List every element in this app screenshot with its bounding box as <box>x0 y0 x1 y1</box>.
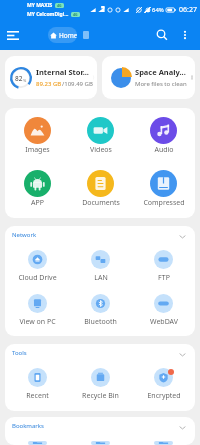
staticText: Images <box>25 145 50 155</box>
staticText: FTP <box>158 273 170 283</box>
button[interactable]: FTP <box>132 250 195 283</box>
staticText: Cloud Drive <box>18 273 57 283</box>
staticText: View on PC <box>19 317 56 327</box>
button[interactable]: Download <box>5 441 69 445</box>
button[interactable]: Audio <box>132 117 195 155</box>
staticText: Home <box>59 31 77 40</box>
button[interactable]: View on PC <box>5 294 69 327</box>
button[interactable]: Menu <box>4 26 22 44</box>
staticText: Documents <box>82 198 120 208</box>
button[interactable]: Recycle Bin <box>69 368 132 401</box>
staticText: % <box>23 78 27 83</box>
staticText: Network <box>12 231 37 239</box>
button[interactable]: Cloud Drive <box>5 250 69 283</box>
button[interactable]: WebDAV <box>132 294 195 327</box>
staticText: Internal Stor... <box>36 67 89 77</box>
button[interactable]: Collapse Bookmarks <box>178 423 187 432</box>
button[interactable]: 82 <box>5 56 97 99</box>
button[interactable]: Storage <box>79 28 93 42</box>
button[interactable]: Space Analy... <box>102 56 195 99</box>
staticText: APP <box>31 198 44 208</box>
button[interactable]: Pictures <box>69 441 132 445</box>
staticText: Space Analy... <box>135 67 186 77</box>
button[interactable]: Compressed <box>132 170 195 208</box>
staticText: MY MAXIS <box>27 2 53 9</box>
button[interactable]: Documents <box>69 170 132 208</box>
staticText: Compressed <box>143 198 185 208</box>
staticText: WebDAV <box>150 317 178 327</box>
button[interactable]: APP <box>5 170 69 208</box>
staticText: 4G <box>57 3 62 8</box>
staticText: MY CelcomDigi... <box>27 11 69 18</box>
button[interactable]: Search <box>155 28 169 42</box>
staticText: Audio <box>154 145 174 155</box>
button[interactable]: Bluetooth <box>69 294 132 327</box>
staticText: Videos <box>90 145 112 155</box>
staticText: Encrypted <box>147 391 181 401</box>
button[interactable]: More options <box>178 28 192 42</box>
staticText: Recent <box>26 391 49 401</box>
staticText: 4G <box>73 12 78 17</box>
staticText: Recycle Bin <box>82 391 119 401</box>
button[interactable]: Movies <box>132 441 195 445</box>
button[interactable]: Encrypted <box>132 368 195 401</box>
button[interactable]: Recent <box>5 368 69 401</box>
staticText: Bluetooth <box>84 317 117 327</box>
button[interactable]: Images <box>5 117 69 155</box>
button[interactable]: Home <box>50 27 77 43</box>
staticText: 89.23 GB <box>36 80 62 88</box>
staticText: More files to clean <box>135 80 187 88</box>
button[interactable]: LAN <box>69 250 132 283</box>
staticText: 06:27 <box>179 5 197 15</box>
button[interactable]: Collapse Network <box>178 232 187 241</box>
staticText: Bookmarks <box>12 422 44 430</box>
staticText: LAN <box>94 273 108 283</box>
staticText: 82 <box>15 74 23 83</box>
button[interactable]: Videos <box>69 117 132 155</box>
button[interactable]: Collapse Tools <box>178 350 187 359</box>
staticText: /109.49 GB <box>62 80 93 88</box>
staticText: Tools <box>12 349 27 357</box>
staticText: 64% <box>152 6 164 14</box>
